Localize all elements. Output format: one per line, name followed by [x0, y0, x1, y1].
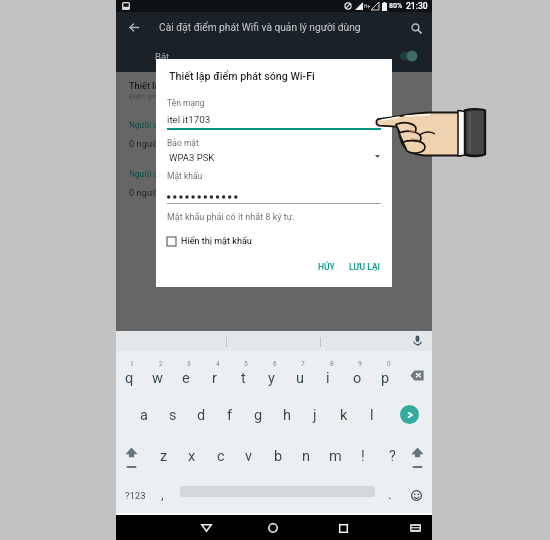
staticText: f	[227, 407, 233, 424]
staticText: Điểm phát sóng Wi-Fi itel it1703 đang ho…	[129, 92, 290, 101]
button[interactable]: Home	[263, 518, 283, 538]
staticText: 5	[244, 360, 248, 368]
staticText: Bật	[155, 51, 170, 62]
button[interactable]: x	[179, 438, 205, 474]
staticText: LƯU LẠI	[349, 262, 380, 272]
staticText: l	[370, 407, 374, 424]
staticText: g	[254, 407, 263, 424]
staticText: Thiết lập điểm phát sóng Wi-Fi	[129, 80, 255, 91]
button[interactable]: a	[131, 397, 157, 433]
button[interactable]: ?123	[117, 483, 153, 507]
staticText: h	[283, 407, 291, 424]
staticText: 8	[330, 360, 334, 368]
staticText: 1	[130, 360, 134, 368]
staticText: w	[152, 370, 163, 387]
staticText: n	[302, 448, 311, 465]
button[interactable]: w	[144, 359, 170, 397]
button[interactable]: HỦY	[314, 258, 339, 276]
staticText: 80%	[389, 2, 403, 10]
staticText: Người dùng được kết nối	[129, 120, 220, 130]
button[interactable]: Recent apps	[333, 518, 354, 538]
button[interactable]: Back	[123, 17, 145, 38]
staticText: 0	[387, 360, 391, 368]
button[interactable]: r	[201, 359, 227, 397]
button[interactable]: Shift	[405, 437, 430, 475]
staticText: Tên mạng	[167, 98, 205, 108]
button[interactable]: d	[188, 397, 214, 433]
staticText: q	[125, 370, 134, 387]
button[interactable]: Switch keyboard	[406, 519, 424, 537]
staticText: 6	[273, 360, 277, 368]
staticText: s	[169, 407, 177, 424]
button[interactable]: Hotspot on	[394, 46, 424, 66]
staticText: WPA3 PSK	[169, 152, 215, 163]
staticText: HỦY	[318, 262, 335, 272]
staticText: Mật khẩu phải có ít nhất 8 ký tự.	[167, 212, 295, 223]
button[interactable]: s	[160, 397, 186, 433]
button[interactable]: y	[258, 359, 284, 397]
button[interactable]: .	[379, 483, 401, 507]
staticText: j	[313, 407, 317, 424]
staticText: Hiển thị mật khẩu	[181, 236, 252, 247]
button[interactable]: Back	[196, 518, 217, 538]
button[interactable]: u	[287, 359, 313, 397]
staticText: ?	[389, 448, 396, 465]
button[interactable]: n	[293, 438, 319, 474]
staticText: 3	[187, 360, 191, 368]
button[interactable]: q	[116, 359, 142, 397]
button[interactable]: k	[331, 397, 357, 433]
staticText: z	[160, 448, 168, 465]
staticText: o	[353, 370, 362, 387]
staticText: !	[361, 448, 365, 465]
staticText: c	[217, 448, 225, 465]
staticText: itel it1703	[167, 114, 211, 125]
button[interactable]: Voice input	[407, 332, 427, 350]
staticText: t	[241, 370, 246, 387]
staticText: b	[274, 448, 283, 465]
button[interactable]: o	[344, 359, 370, 397]
staticText: y	[268, 370, 275, 387]
button[interactable]: l	[359, 397, 385, 433]
button[interactable]: f	[217, 397, 243, 433]
staticText: 9	[358, 360, 362, 368]
button[interactable]: c	[208, 438, 234, 474]
button[interactable]: b	[265, 438, 291, 474]
staticText: 21:30	[406, 1, 428, 11]
staticText: Bảo mật	[167, 138, 199, 148]
staticText: u	[296, 370, 304, 387]
button[interactable]: !	[350, 438, 376, 474]
button[interactable]: z	[151, 438, 177, 474]
button[interactable]: Shift	[119, 437, 144, 475]
button[interactable]: Backspace	[404, 364, 429, 386]
button[interactable]: m	[322, 438, 348, 474]
button[interactable]: p	[372, 359, 398, 397]
button[interactable]: Emoji	[405, 483, 427, 507]
staticText: .	[388, 487, 392, 502]
button[interactable]: h	[274, 397, 300, 433]
button[interactable]: v	[236, 438, 262, 474]
staticText: Cài đặt điểm phát Wifi và quản lý người …	[159, 22, 361, 34]
button[interactable]: Enter	[400, 405, 419, 424]
staticText: p	[381, 370, 390, 387]
button[interactable]: j	[302, 397, 328, 433]
staticText: e	[182, 370, 190, 387]
staticText: 0 người dùng bị chặn	[129, 187, 216, 198]
staticText: v	[245, 448, 253, 465]
button[interactable]: i	[315, 359, 341, 397]
staticText: Mật khẩu	[167, 171, 203, 181]
button[interactable]: g	[245, 397, 271, 433]
button[interactable]: t	[230, 359, 256, 397]
button[interactable]: LƯU LẠI	[345, 258, 384, 276]
button[interactable]: e	[173, 359, 199, 397]
staticText: 0 người dùng được kết nối	[129, 138, 237, 149]
button[interactable]: Search	[406, 18, 428, 40]
button[interactable]: ,	[151, 483, 173, 507]
staticText: 4	[216, 360, 220, 368]
staticText: r	[212, 370, 217, 387]
staticText: 7	[301, 360, 305, 368]
button[interactable]: ?	[379, 438, 405, 474]
button[interactable]: Hiển thị mật khẩu	[167, 234, 252, 248]
staticText: i	[326, 370, 330, 387]
staticText: Thiết lập điểm phát sóng Wi-Fi	[169, 70, 315, 83]
